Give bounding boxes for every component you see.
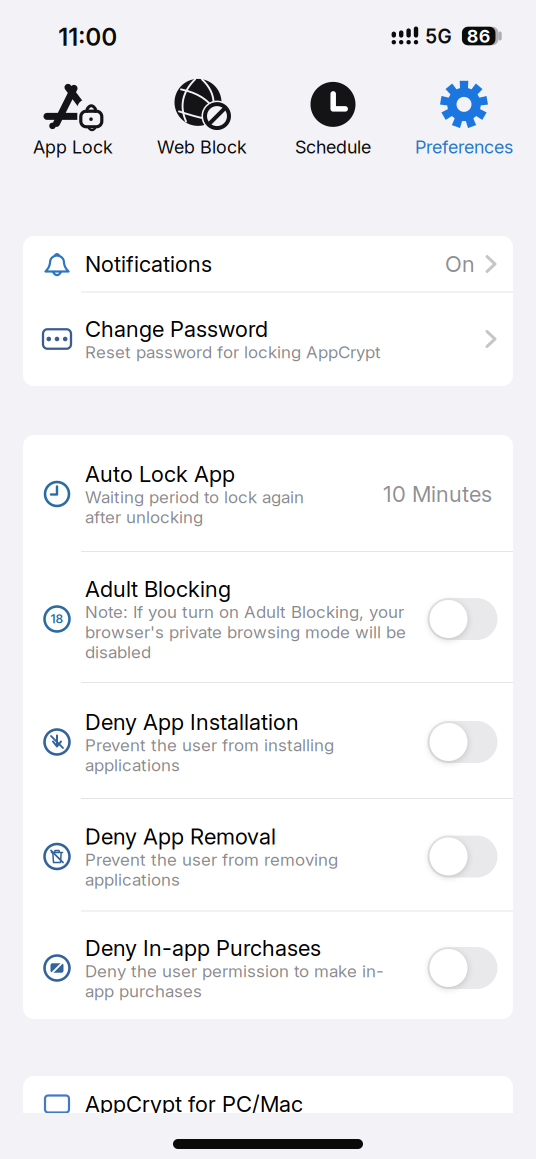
- button[interactable]: App Lock: [13, 74, 133, 160]
- staticText: 10 Minutes: [383, 481, 492, 507]
- staticText: Auto Lock App: [85, 461, 235, 487]
- button[interactable]: Preferences: [398, 74, 530, 160]
- staticText: Deny App Removal: [85, 823, 276, 849]
- button[interactable]: Web Block: [137, 74, 267, 160]
- staticText: applications: [85, 869, 180, 890]
- staticText: Waiting period to lock again: [85, 487, 304, 507]
- staticText: Adult Blocking: [85, 576, 231, 602]
- staticText: Notifications: [85, 251, 212, 277]
- button[interactable]: Deny In-app Purchases: [23, 914, 513, 1022]
- staticText: Prevent the user from installing: [85, 735, 334, 755]
- button[interactable]: Deny App Installation: [23, 684, 513, 800]
- staticText: Preferences: [415, 136, 513, 158]
- staticText: Deny In-app Purchases: [85, 935, 321, 961]
- staticText: applications: [85, 755, 180, 775]
- staticText: Reset password for locking AppCrypt: [85, 342, 381, 362]
- button[interactable]: AppCrypt for PC/Mac: [23, 1076, 513, 1132]
- staticText: Deny the user permission to make in-: [85, 961, 384, 981]
- staticText: app purchases: [85, 981, 202, 1001]
- staticText: 86: [467, 26, 491, 47]
- button[interactable]: Notifications: [23, 236, 513, 292]
- button[interactable]: Auto Lock App: [23, 436, 513, 552]
- staticText: Prevent the user from removing: [85, 849, 338, 869]
- staticText: Web Block: [157, 136, 247, 158]
- staticText: after unlocking: [85, 507, 203, 527]
- staticText: On: [445, 251, 475, 277]
- button[interactable]: 18: [23, 553, 513, 684]
- staticText: disabled: [85, 642, 151, 662]
- button[interactable]: Deny App Removal: [23, 800, 513, 912]
- staticText: AppCrypt for PC/Mac: [85, 1091, 303, 1117]
- staticText: App Lock: [33, 136, 113, 158]
- staticText: Note: If you turn on Adult Blocking, you…: [85, 602, 404, 622]
- staticText: Schedule: [295, 136, 371, 158]
- button[interactable]: Change Password: [23, 292, 513, 386]
- staticText: 18: [50, 612, 63, 626]
- staticText: Change Password: [85, 316, 268, 342]
- button[interactable]: Schedule: [270, 74, 396, 160]
- staticText: Deny App Installation: [85, 709, 299, 735]
- staticText: browser's private browsing mode will be: [85, 622, 406, 642]
- staticText: 5G: [425, 25, 451, 48]
- staticText: 11:00: [58, 23, 117, 51]
